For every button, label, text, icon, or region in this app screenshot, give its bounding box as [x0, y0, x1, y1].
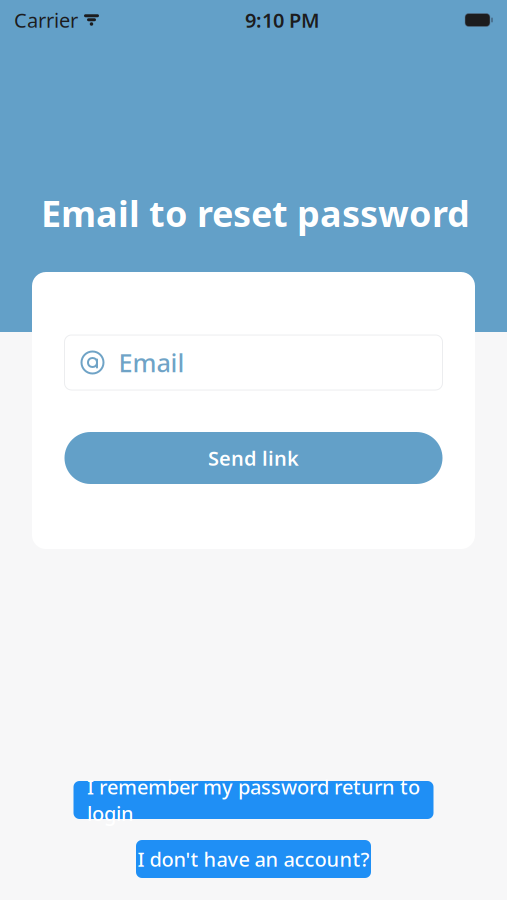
staticText: I remember my password return to login [87, 773, 420, 826]
button[interactable]: I don't have an account? [136, 840, 371, 878]
button[interactable]: I remember my password return to login [73, 781, 433, 819]
staticText: Send link [208, 445, 299, 471]
staticText: I don't have an account? [137, 846, 369, 872]
button[interactable]: Email [64, 335, 442, 390]
staticText: Carrier [14, 7, 78, 33]
staticText: 9:10 PM [245, 7, 320, 33]
button[interactable]: Send link [64, 432, 442, 484]
staticText: Email to reset password [41, 189, 470, 237]
staticText: Email [118, 346, 184, 379]
